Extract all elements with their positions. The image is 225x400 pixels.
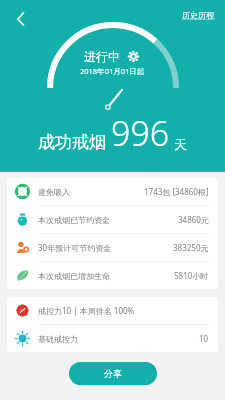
staticText: 本次戒烟已节约资金 [38, 215, 110, 225]
button[interactable]: 本次戒烟已增加生命 [7, 262, 218, 289]
button[interactable]: 本次戒烟已节约资金 [7, 206, 218, 234]
staticText: 5810小时 [174, 270, 209, 281]
button[interactable]: 基础戒控力 [7, 325, 218, 352]
staticText: 本次戒烟已增加生命 [38, 271, 110, 281]
button[interactable]: 30年预计可节约资金 [7, 234, 218, 262]
button[interactable]: 历史历程 [179, 8, 217, 22]
staticText: 383250元 [173, 242, 209, 253]
staticText: 10 [199, 333, 209, 344]
staticText: 进行中 [84, 49, 120, 64]
button[interactable]: Settings [125, 48, 141, 64]
staticText: 天 [174, 136, 187, 152]
button[interactable]: 分享 [69, 362, 157, 385]
button[interactable]: 戒控力10 | 本周排名 100% [7, 297, 218, 325]
button[interactable]: Back [6, 4, 36, 34]
staticText: 基础戒控力 [38, 334, 78, 344]
staticText: 分享 [104, 368, 122, 379]
staticText: 996 [111, 110, 170, 156]
button[interactable]: 避免吸入 [7, 178, 218, 206]
staticText: 30年预计可节约资金 [38, 242, 112, 253]
staticText: 历史历程 [182, 10, 214, 20]
staticText: 戒控力10 | 本周排名 100% [38, 305, 135, 316]
staticText: 34860元 [178, 214, 209, 225]
staticText: 1743包 [34860根] [144, 186, 209, 197]
staticText: 避免吸入 [38, 187, 70, 197]
staticText: 2018年01月01日起 [80, 66, 145, 76]
staticText: 成功戒烟 [38, 132, 106, 153]
